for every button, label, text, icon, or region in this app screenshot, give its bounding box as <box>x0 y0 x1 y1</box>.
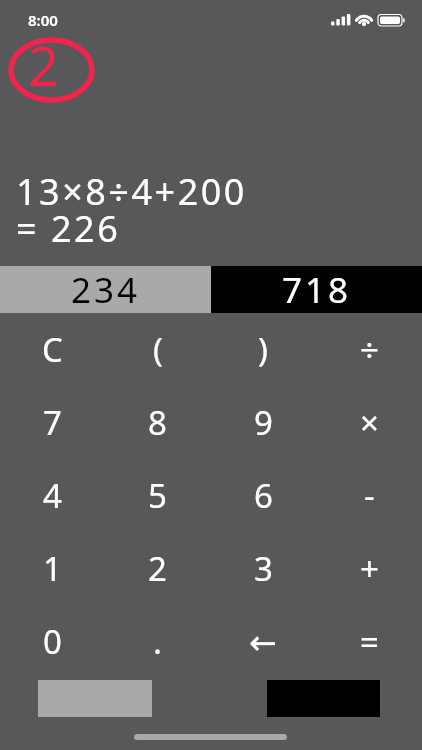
button[interactable]: . <box>105 605 210 678</box>
staticText: = <box>360 619 379 664</box>
button[interactable]: 234 <box>0 266 211 313</box>
staticText: 3 <box>254 546 273 591</box>
staticText: 0 <box>43 619 62 664</box>
staticText: 8 <box>148 400 167 445</box>
button[interactable]: ← <box>210 605 316 678</box>
staticText: 2 <box>148 546 167 591</box>
button[interactable]: 3 <box>210 532 316 605</box>
staticText: 7 <box>43 400 62 445</box>
button[interactable]: 718 <box>211 266 422 313</box>
staticText: 2 <box>28 28 59 102</box>
staticText: × <box>360 400 379 445</box>
button[interactable]: = <box>316 605 422 678</box>
button[interactable]: 1 <box>0 532 105 605</box>
staticText: 4 <box>43 473 62 518</box>
button[interactable]: 6 <box>210 459 316 532</box>
staticText: 13×8÷4+200 <box>16 167 247 216</box>
button[interactable]: 7 <box>0 386 105 459</box>
staticText: 9 <box>254 400 273 445</box>
button[interactable]: 0 <box>0 605 105 678</box>
button[interactable]: ÷ <box>316 313 422 386</box>
button[interactable]: 4 <box>0 459 105 532</box>
staticText: 234 <box>71 266 141 313</box>
staticText: 5 <box>148 473 167 518</box>
button[interactable]: 8 <box>105 386 210 459</box>
staticText: 718 <box>282 266 352 313</box>
staticText: 8:00 <box>28 10 58 30</box>
button[interactable]: 2 <box>105 532 210 605</box>
staticText: = 226 <box>16 204 121 253</box>
staticText: C <box>42 327 63 372</box>
staticText: ← <box>249 623 277 661</box>
button[interactable]: ( <box>105 313 210 386</box>
staticText: + <box>360 546 379 591</box>
staticText: ÷ <box>360 327 379 372</box>
staticText: ( <box>153 327 163 372</box>
staticText: . <box>153 619 162 664</box>
button[interactable]: 5 <box>105 459 210 532</box>
button[interactable]: × <box>316 386 422 459</box>
button[interactable]: C <box>0 313 105 386</box>
staticText: 1 <box>43 546 62 591</box>
button[interactable]: - <box>316 459 422 532</box>
button[interactable]: + <box>316 532 422 605</box>
staticText: 6 <box>254 473 273 518</box>
staticText: ) <box>258 327 268 372</box>
button[interactable]: 9 <box>210 386 316 459</box>
button[interactable]: ) <box>210 313 316 386</box>
staticText: - <box>364 473 375 518</box>
